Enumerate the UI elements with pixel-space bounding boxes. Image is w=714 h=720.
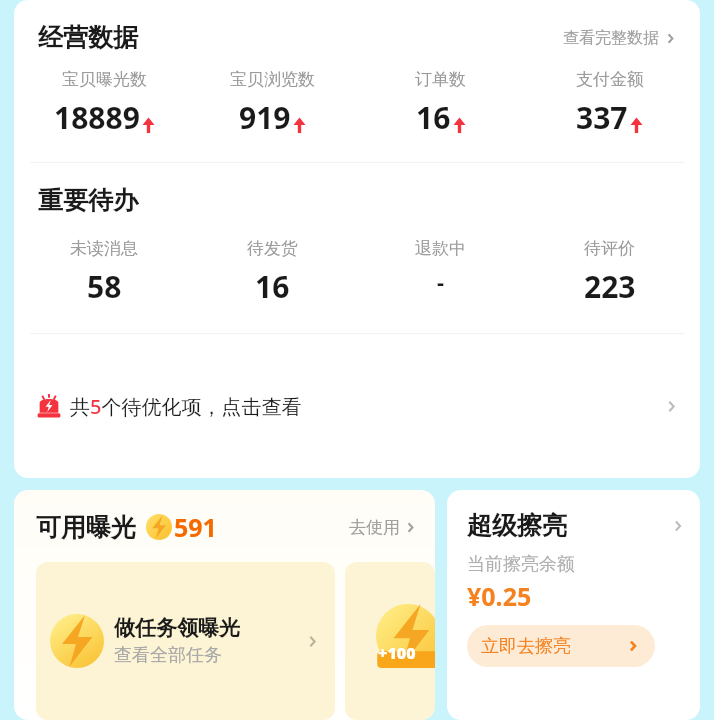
staticText: 223 (584, 266, 636, 307)
button[interactable]: 支付金额 (525, 69, 694, 138)
staticText: 查看全部任务 (114, 644, 222, 667)
staticText: 未读消息 (70, 238, 138, 259)
staticText: 可用曝光 (36, 512, 136, 543)
staticText: 宝贝曝光数 (62, 69, 147, 90)
button[interactable]: 立即去擦亮 (467, 625, 655, 667)
staticText: 订单数 (415, 69, 466, 90)
staticText: 16 (255, 266, 290, 307)
staticText: 919 (239, 97, 291, 138)
button[interactable]: 宝贝浏览数 (188, 69, 356, 138)
button[interactable]: 查看完整数据 (559, 24, 682, 52)
staticText: 当前擦亮余额 (467, 553, 575, 576)
staticText: 重要待办 (38, 185, 138, 216)
button[interactable]: 宝贝曝光数 (20, 69, 188, 138)
staticText: 58 (87, 266, 122, 307)
button[interactable]: 做任务领曝光 (36, 562, 335, 720)
staticText: 去使用 (349, 517, 400, 538)
staticText: 退款中 (415, 238, 466, 259)
staticText: 做任务领曝光 (114, 615, 240, 641)
button[interactable]: +100 (345, 562, 435, 720)
staticText: 经营数据 (38, 22, 138, 53)
staticText: 337 (576, 97, 628, 138)
button[interactable]: 待发货 (188, 238, 356, 307)
staticText: 查看完整数据 (563, 28, 659, 48)
button[interactable]: 共5个待优化项，点击查看 (14, 334, 700, 478)
staticText: 待评价 (584, 238, 635, 259)
staticText: 16 (416, 97, 451, 138)
button[interactable]: 未读消息 (20, 238, 188, 307)
staticText: 宝贝浏览数 (230, 69, 315, 90)
staticText: ¥0.25 (467, 579, 532, 613)
staticText: 支付金额 (576, 69, 644, 90)
staticText: - (437, 266, 445, 296)
button[interactable]: 去使用 (346, 514, 421, 541)
button[interactable]: 退款中 (356, 238, 525, 296)
staticText: +100 (378, 642, 416, 664)
staticText: 共5个待优化项，点击查看 (70, 393, 302, 420)
staticText: 待发货 (247, 238, 298, 259)
staticText: 立即去擦亮 (481, 635, 571, 658)
button[interactable]: 待评价 (525, 238, 694, 307)
staticText: 591 (174, 510, 217, 544)
button[interactable]: 超级擦亮 (447, 490, 700, 720)
staticText: 18889 (54, 97, 140, 138)
button[interactable]: 订单数 (356, 69, 525, 138)
staticText: 超级擦亮 (467, 510, 567, 541)
